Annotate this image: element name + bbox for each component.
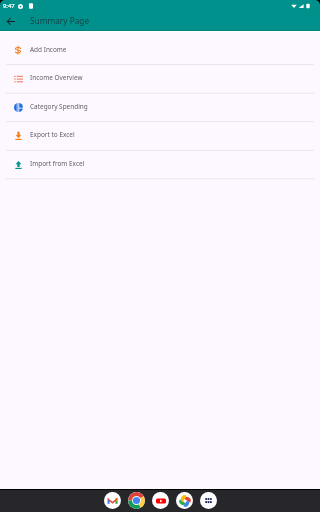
staticText: 9:47	[3, 2, 15, 10]
button[interactable]: YouTube	[152, 492, 169, 509]
button[interactable]: Add Income	[0, 36, 320, 65]
button[interactable]: All apps	[200, 492, 217, 509]
staticText: Add Income	[30, 45, 67, 54]
button[interactable]: Gmail	[104, 492, 121, 509]
button[interactable]: Back	[2, 13, 18, 29]
button[interactable]: Category Spending	[0, 93, 320, 122]
staticText: Export to Excel	[30, 130, 75, 139]
button[interactable]: Chrome	[128, 492, 145, 509]
button[interactable]: Import from Excel	[0, 150, 320, 179]
staticText: Income Overview	[30, 73, 83, 82]
staticText: Import from Excel	[30, 159, 85, 168]
staticText: Summary Page	[30, 15, 90, 26]
button[interactable]: Export to Excel	[0, 121, 320, 150]
button[interactable]: Income Overview	[0, 64, 320, 93]
button[interactable]: Photos	[176, 492, 193, 509]
staticText: Category Spending	[30, 102, 88, 111]
